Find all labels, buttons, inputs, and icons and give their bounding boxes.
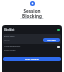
button[interactable]: Allow exceptions — [2, 45, 62, 48]
button[interactable]: Blocklist — [2, 28, 62, 31]
other: Session logo — [30, 1, 35, 6]
button[interactable]: Add apps — [43, 38, 60, 42]
button[interactable]: Block apps — [3, 35, 61, 37]
staticText: Social — [4, 39, 10, 42]
button[interactable]: Start session — [3, 57, 61, 61]
button[interactable]: Strict mode — [2, 49, 62, 52]
staticText: Session Blocking — [0, 8, 64, 19]
staticText: Start session — [25, 58, 40, 61]
staticText: Allow exceptions — [4, 45, 21, 48]
staticText: Strict mode — [4, 49, 16, 52]
staticText: Choose what to block — [6, 17, 58, 20]
staticText: Block apps — [4, 35, 15, 37]
staticText: Blocklist — [4, 28, 15, 31]
staticText: Add apps — [47, 39, 56, 42]
